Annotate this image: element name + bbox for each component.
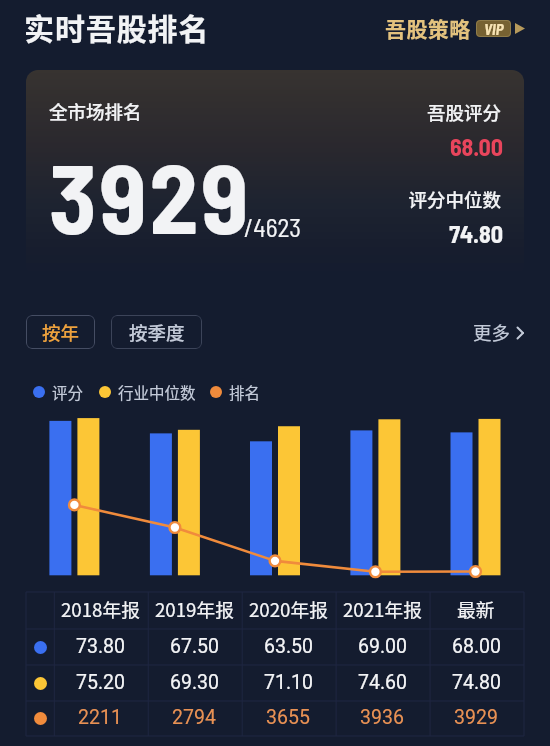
staticText: 74.60 [358, 671, 407, 694]
staticText: /4623 [244, 211, 302, 242]
staticText: 2019年报 [155, 595, 234, 622]
staticText: 按季度 [129, 319, 185, 346]
staticText: 评分中位数 [322, 186, 501, 213]
staticText: 实时吾股排名 [24, 5, 210, 48]
staticText: 吾股评分 [322, 99, 501, 126]
staticText: 68.00 [452, 635, 501, 658]
staticText: 按年 [42, 319, 80, 346]
staticText: 评分 [52, 381, 84, 403]
staticText: 3929 [454, 706, 498, 729]
button[interactable]: 实时吾股排名 [24, 5, 210, 48]
staticText: 71.10 [264, 671, 313, 694]
staticText: 2018年报 [61, 595, 140, 622]
staticText: 74.80 [452, 671, 501, 694]
staticText: 2021年报 [343, 595, 422, 622]
staticText: 68.00 [323, 132, 503, 161]
staticText: 74.80 [323, 219, 503, 248]
button[interactable]: 吾股策略 [385, 13, 525, 43]
staticText: VIP [484, 20, 504, 37]
button[interactable]: 按年 [26, 315, 95, 349]
staticText: 73.80 [76, 635, 125, 658]
staticText: 63.50 [264, 635, 313, 658]
staticText: 全市场排名 [49, 98, 142, 125]
staticText: 2020年报 [249, 595, 328, 622]
button[interactable]: 按季度 [111, 315, 202, 349]
staticText: 更多 [473, 319, 511, 346]
staticText: 3929 [49, 136, 252, 253]
staticText: 2794 [172, 706, 216, 729]
staticText: 排名 [229, 381, 261, 403]
staticText: 3655 [266, 706, 310, 729]
staticText: 2211 [78, 706, 122, 729]
staticText: 最新 [457, 595, 495, 622]
staticText: 67.50 [170, 635, 219, 658]
staticText: 69.00 [358, 635, 407, 658]
staticText: 行业中位数 [118, 381, 196, 403]
staticText: 69.30 [170, 671, 219, 694]
button[interactable]: 更多 [473, 319, 525, 346]
staticText: 吾股策略 [385, 13, 471, 43]
staticText: 75.20 [76, 671, 125, 694]
staticText: 3936 [360, 706, 404, 729]
